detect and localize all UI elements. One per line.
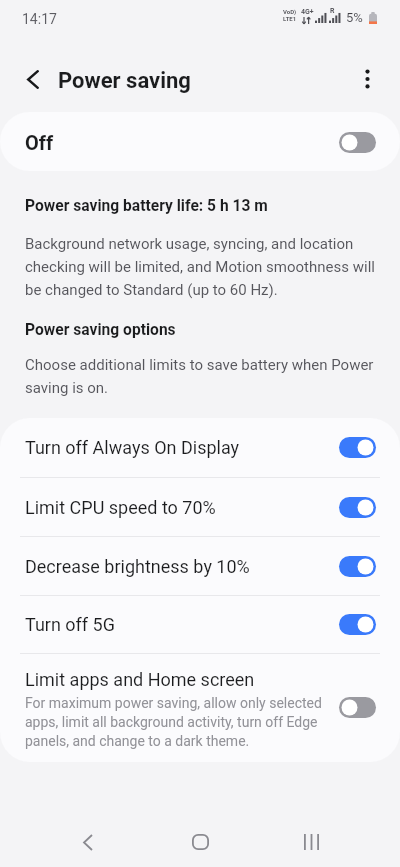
staticText: LTE1 [283,15,297,22]
button[interactable]: Turn off 5G [0,596,400,653]
staticText: Power saving [58,68,191,94]
staticText: Limit apps and Home screen [25,669,255,690]
staticText: Decrease brightness by 10% [25,556,339,577]
staticText: For maximum power saving, allow only sel… [25,695,331,749]
staticText: 5% [346,10,363,25]
button[interactable]: Limit apps and Home screen [0,654,400,749]
staticText: Limit CPU speed to 70% [25,497,339,518]
button[interactable]: Home [170,812,230,867]
staticText: Choose additional limits to save battery… [25,356,385,397]
button[interactable]: More options [350,62,384,96]
button[interactable]: Turn off Always On Display [0,418,400,477]
staticText: Turn off Always On Display [25,437,339,458]
button[interactable]: Limit CPU speed to 70% [0,478,400,536]
staticText: Turn off 5G [25,614,339,635]
staticText: VoD) [283,8,297,15]
button[interactable]: Off [0,112,400,171]
staticText: Power saving options [25,321,176,339]
staticText: Power saving battery life: 5 h 13 m [25,197,268,215]
staticText: 14:17 [22,11,57,27]
staticText: Off [25,131,54,154]
staticText: 4G+ [301,8,314,16]
button[interactable]: Recent apps [281,812,341,867]
button[interactable]: Navigate up [16,62,50,96]
staticText: R [330,7,335,15]
button[interactable]: Decrease brightness by 10% [0,537,400,595]
button[interactable]: Back [58,812,118,867]
staticText: Background network usage, syncing, and l… [25,235,385,299]
